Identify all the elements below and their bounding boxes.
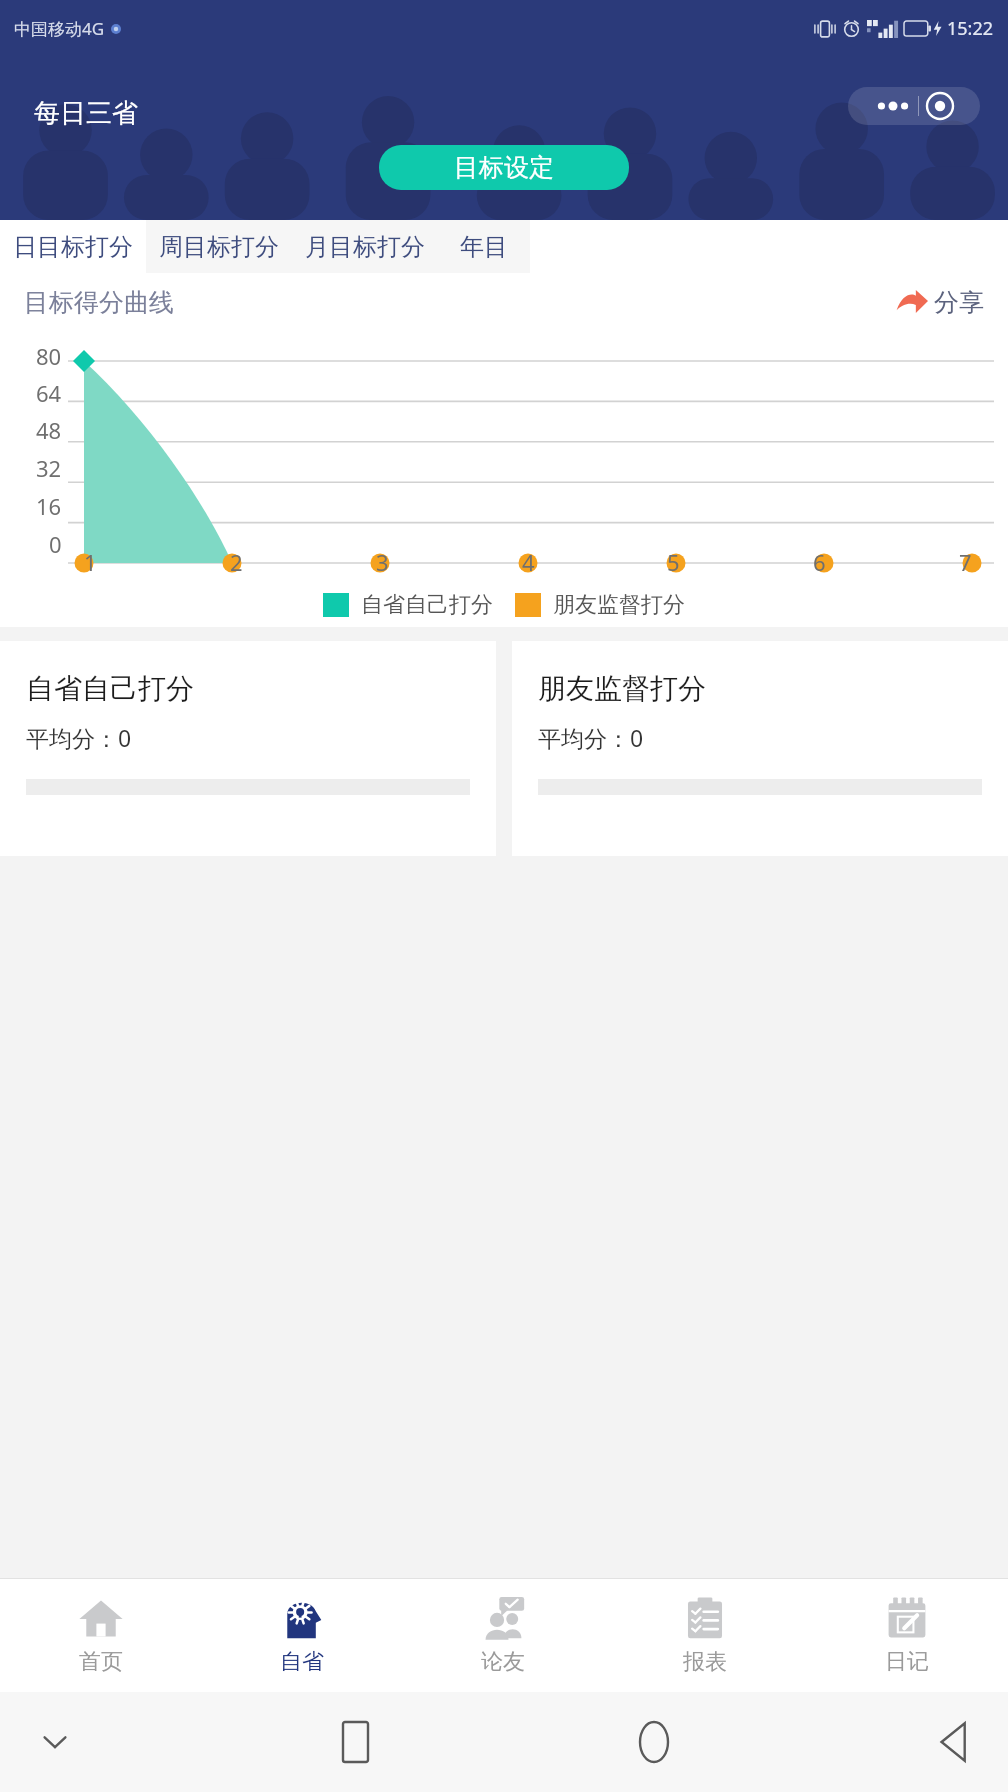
staticText: 报表 (683, 1648, 727, 1676)
button[interactable]: 年目 (438, 220, 530, 273)
button[interactable]: 目标设定 (379, 145, 629, 190)
button[interactable]: 日记 (806, 1579, 1008, 1692)
staticText: 7 (959, 547, 972, 577)
button[interactable]: 朋友监督打分 (512, 641, 1008, 856)
staticText: 目标设定 (454, 152, 554, 183)
staticText: 朋友监督打分 (538, 671, 706, 706)
staticText: 3 (376, 547, 389, 577)
staticText: 自省自己打分 (26, 671, 194, 706)
staticText: 日目标打分 (13, 232, 133, 262)
staticText: 64 (36, 378, 62, 408)
button[interactable]: 日目标打分 (0, 220, 146, 273)
button[interactable]: 自省自己打分 (0, 641, 496, 856)
staticText: 首页 (79, 1648, 123, 1676)
staticText: 日记 (885, 1648, 929, 1676)
button[interactable]: 分享 (896, 287, 984, 318)
staticText: 48 (36, 415, 62, 445)
button[interactable]: 论友 (402, 1579, 604, 1692)
staticText: 月目标打分 (305, 232, 425, 262)
staticText: 2 (230, 547, 243, 577)
staticText: 16 (36, 491, 62, 521)
button[interactable]: Recents (326, 1713, 384, 1771)
staticText: 论友 (481, 1648, 525, 1676)
staticText: 每日三省 (34, 97, 138, 130)
staticText: 分享 (934, 287, 984, 318)
staticText: 周目标打分 (159, 232, 279, 262)
staticText: 自省 (280, 1648, 324, 1676)
staticText: 朋友监督打分 (553, 591, 685, 619)
button[interactable]: 报表 (604, 1579, 806, 1692)
staticText: 15:22 (947, 16, 994, 41)
staticText: 平均分：0 (26, 722, 132, 753)
button[interactable]: Home (625, 1713, 683, 1771)
staticText: 5 (667, 547, 680, 577)
staticText: 目标得分曲线 (24, 287, 174, 318)
button[interactable]: 自省 (201, 1579, 402, 1692)
staticText: 年目 (460, 232, 508, 262)
staticText: 6 (813, 547, 826, 577)
button[interactable]: 周目标打分 (146, 220, 292, 273)
staticText: 0 (49, 529, 62, 559)
staticText: 平均分：0 (538, 722, 644, 753)
staticText: 4 (522, 547, 535, 577)
button[interactable]: 首页 (0, 1579, 201, 1692)
staticText: 自省自己打分 (361, 591, 493, 619)
staticText: 80 (36, 341, 62, 371)
button[interactable]: Hide keyboard (26, 1713, 84, 1771)
button[interactable]: 月目标打分 (292, 220, 438, 273)
button[interactable]: Back (924, 1713, 982, 1771)
button[interactable]: Menu (848, 87, 980, 125)
staticText: 32 (36, 453, 62, 483)
staticText: 1 (84, 547, 97, 577)
staticText: 中国移动4G (14, 17, 105, 40)
